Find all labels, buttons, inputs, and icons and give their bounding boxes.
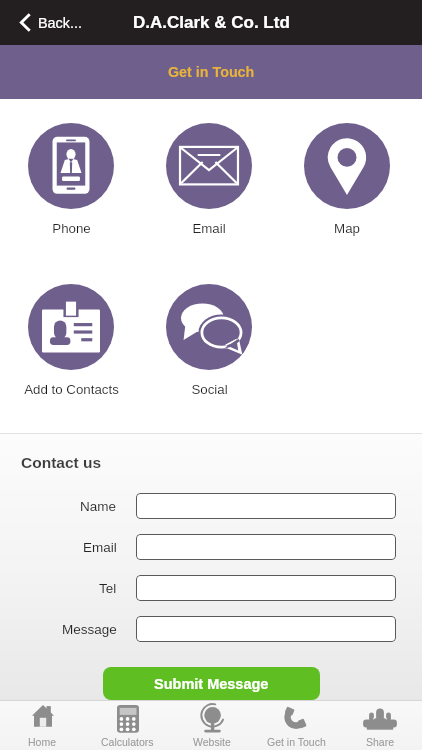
- button[interactable]: Home: [0, 701, 85, 750]
- staticText: Email: [83, 540, 117, 555]
- staticText: Calculators: [101, 736, 154, 748]
- staticText: Back...: [38, 15, 82, 31]
- button[interactable]: Share: [338, 701, 422, 750]
- staticText: Website: [193, 736, 231, 748]
- button[interactable]: [136, 534, 396, 560]
- staticText: Share: [366, 736, 395, 748]
- staticText: Submit Message: [154, 676, 269, 692]
- staticText: Add to Contacts: [24, 382, 119, 397]
- staticText: Tel: [99, 581, 117, 596]
- staticText: Social: [191, 382, 228, 397]
- button[interactable]: Map: [278, 123, 416, 236]
- button[interactable]: [136, 493, 396, 519]
- button[interactable]: [136, 575, 396, 601]
- staticText: Name: [80, 499, 117, 514]
- staticText: D.A.Clark & Co. Ltd: [133, 13, 290, 32]
- button[interactable]: Submit Message: [103, 667, 320, 700]
- staticText: Contact us: [21, 454, 102, 471]
- button[interactable]: [136, 616, 396, 642]
- staticText: Map: [334, 221, 360, 236]
- staticText: Message: [62, 622, 117, 637]
- button[interactable]: Email: [140, 123, 278, 236]
- button[interactable]: Phone: [2, 123, 140, 236]
- staticText: Phone: [52, 221, 91, 236]
- staticText: Get in Touch: [267, 736, 326, 748]
- staticText: Email: [192, 221, 226, 236]
- button[interactable]: Website: [170, 701, 254, 750]
- button[interactable]: Back: [20, 13, 82, 32]
- button[interactable]: Calculators: [85, 701, 170, 750]
- button[interactable]: Social: [140, 284, 278, 397]
- button[interactable]: Add to Contacts: [2, 284, 140, 397]
- staticText: Home: [28, 736, 57, 748]
- button[interactable]: Get in Touch: [254, 701, 338, 750]
- staticText: Get in Touch: [168, 64, 255, 80]
